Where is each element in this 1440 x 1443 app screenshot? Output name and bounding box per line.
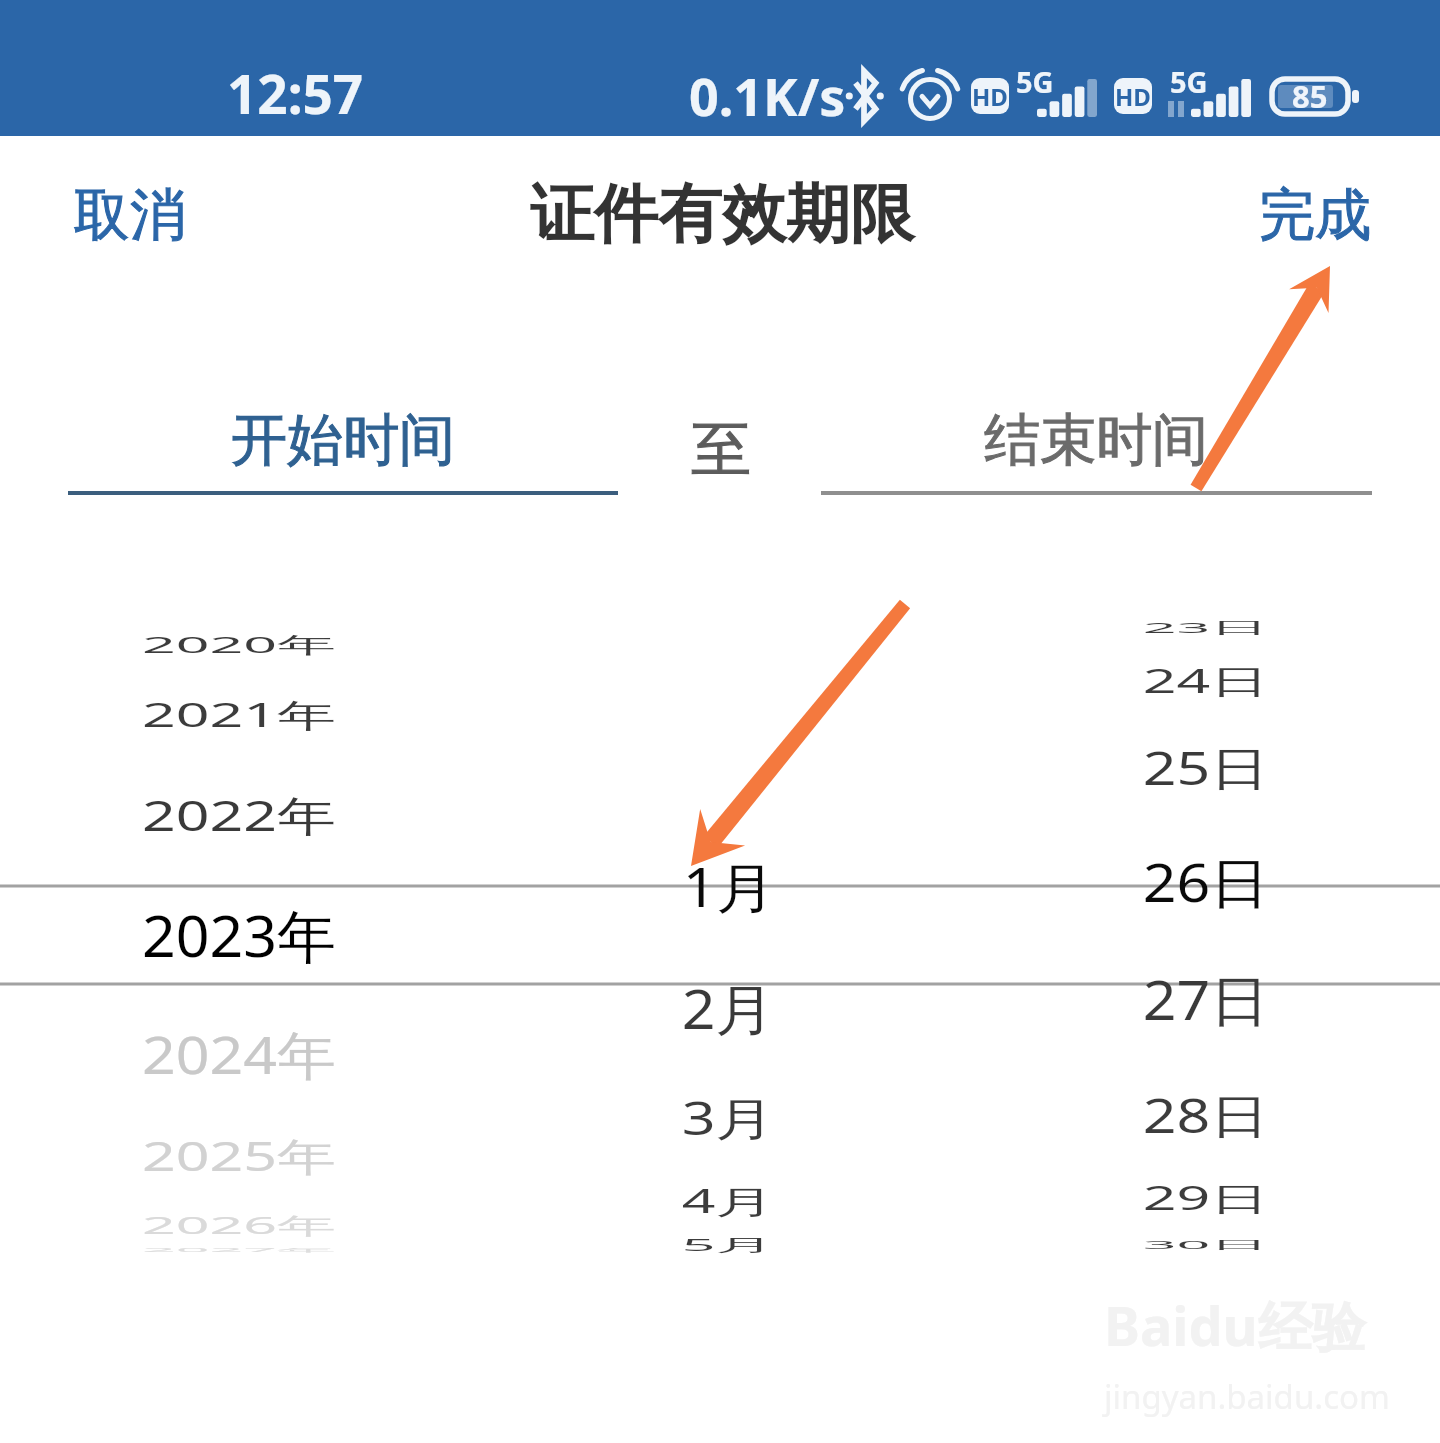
button[interactable]: 2024年 <box>29 999 449 1109</box>
staticText: 28日 <box>996 1083 1416 1147</box>
button[interactable]: 27日 <box>996 944 1416 1054</box>
staticText: 1月 <box>519 849 939 924</box>
staticText: 2021年 <box>29 692 449 737</box>
staticText: 结束时间 <box>984 405 1208 476</box>
staticText: 5G <box>1016 62 1054 101</box>
staticText: 30日 <box>996 1237 1416 1252</box>
button[interactable]: 2026年 <box>29 1170 449 1280</box>
staticText: 开始时间 <box>231 405 455 476</box>
staticText: 取消 <box>74 180 186 251</box>
button[interactable]: 23日 <box>996 572 1416 682</box>
button[interactable]: 完成 <box>1225 162 1405 269</box>
button[interactable]: 2022年 <box>29 760 449 870</box>
staticText: jingyan.baidu.com <box>1104 1374 1390 1419</box>
staticText: 完成 <box>1259 180 1371 251</box>
staticText: 5月 <box>518 1233 938 1256</box>
staticText: 开始时间 <box>231 405 455 476</box>
button[interactable]: 25日 <box>996 712 1416 822</box>
staticText: 24日 <box>996 658 1416 703</box>
staticText: 至 <box>691 412 751 488</box>
button[interactable]: 开始时间 <box>68 380 618 500</box>
staticText: 0.1K/s <box>689 60 846 131</box>
staticText: 完成 <box>1259 180 1371 251</box>
staticText: 12:57 <box>227 57 364 129</box>
staticText: 2026年 <box>29 1210 449 1241</box>
staticText: 2023年 <box>29 896 449 975</box>
staticText: 证件有效期限 <box>530 174 914 255</box>
staticText: 2027年 <box>29 1247 449 1254</box>
staticText: 4月 <box>518 1179 938 1222</box>
button[interactable]: 2027年 <box>29 1195 449 1305</box>
staticText: 2024年 <box>29 1019 449 1090</box>
button[interactable]: 28日 <box>996 1060 1416 1170</box>
button[interactable]: 29日 <box>996 1142 1416 1252</box>
staticText: 取消 <box>74 180 186 251</box>
button[interactable]: 3月 <box>518 1062 938 1172</box>
staticText: Baidu经验 <box>1104 1288 1366 1362</box>
staticText: 2022年 <box>29 787 449 844</box>
staticText: 27日 <box>996 962 1416 1037</box>
button[interactable]: 24日 <box>996 625 1416 735</box>
staticText: HD <box>972 80 1008 113</box>
staticText: 29日 <box>996 1176 1416 1219</box>
button[interactable]: 结束时间 <box>821 380 1371 500</box>
staticText: 2月 <box>518 971 938 1046</box>
button[interactable]: 26日 <box>996 826 1416 936</box>
button[interactable]: 2021年 <box>29 659 449 769</box>
button[interactable]: 4月 <box>518 1145 938 1255</box>
staticText: 3月 <box>518 1086 938 1149</box>
staticText: 23日 <box>996 617 1416 638</box>
staticText: 2020年 <box>29 629 449 660</box>
staticText: 25日 <box>996 736 1416 799</box>
button[interactable]: 30日 <box>996 1189 1416 1299</box>
button[interactable]: 1月 <box>519 831 939 941</box>
button[interactable]: 2023年 <box>29 880 449 990</box>
staticText: 至 <box>691 412 751 488</box>
button[interactable]: 2020年 <box>29 589 449 699</box>
staticText: 26日 <box>996 845 1416 918</box>
button[interactable]: 取消 <box>40 162 220 269</box>
staticText: HD <box>1115 80 1151 113</box>
staticText: 85 <box>1292 75 1328 117</box>
staticText: 结束时间 <box>984 405 1208 476</box>
staticText: 5G <box>1170 62 1208 101</box>
staticText: 2025年 <box>29 1128 449 1183</box>
button[interactable]: 2月 <box>518 953 938 1063</box>
button[interactable]: 2025年 <box>29 1100 449 1210</box>
button[interactable]: 5月 <box>518 1189 938 1299</box>
